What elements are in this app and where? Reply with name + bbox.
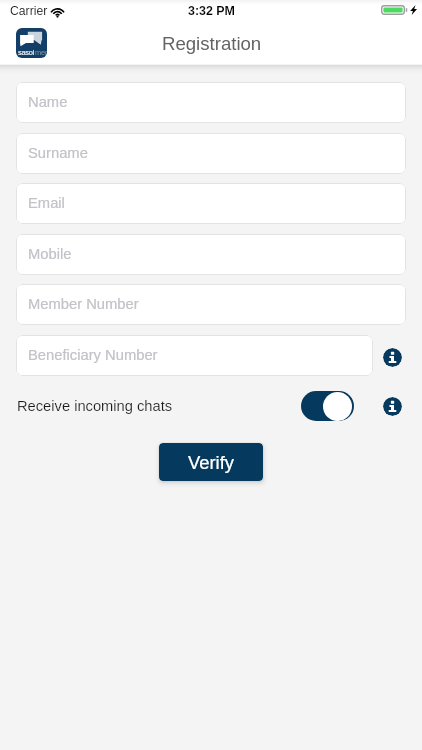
staticText: Verify [188,452,234,473]
button[interactable]: Receive incoming chats toggle [301,391,354,421]
staticText: Registration [162,33,262,54]
button[interactable]: Surname [16,133,406,174]
staticText: Surname [28,145,88,161]
button[interactable]: Verify [159,443,263,481]
button[interactable]: Mobile [16,234,406,275]
staticText: sasol [18,48,35,56]
button[interactable]: Receive incoming chats [17,395,173,417]
staticText: Mobile [28,246,72,262]
staticText: Carrier [10,4,48,18]
staticText: Receive incoming chats [17,398,173,414]
button[interactable]: Member Number [16,284,406,325]
staticText: 3:32 PM [188,4,235,18]
button[interactable]: Beneficiary Number [16,335,373,376]
staticText: med [35,48,47,56]
staticText: Email [28,195,65,211]
button[interactable]: sasolmed logo [16,28,47,58]
button[interactable]: Email [16,183,406,224]
button[interactable]: Name [16,82,406,123]
staticText: Member Number [28,296,139,312]
staticText: Beneficiary Number [28,347,158,363]
button[interactable]: Information [383,397,402,416]
button[interactable]: Information [383,348,402,367]
staticText: Name [28,94,68,110]
